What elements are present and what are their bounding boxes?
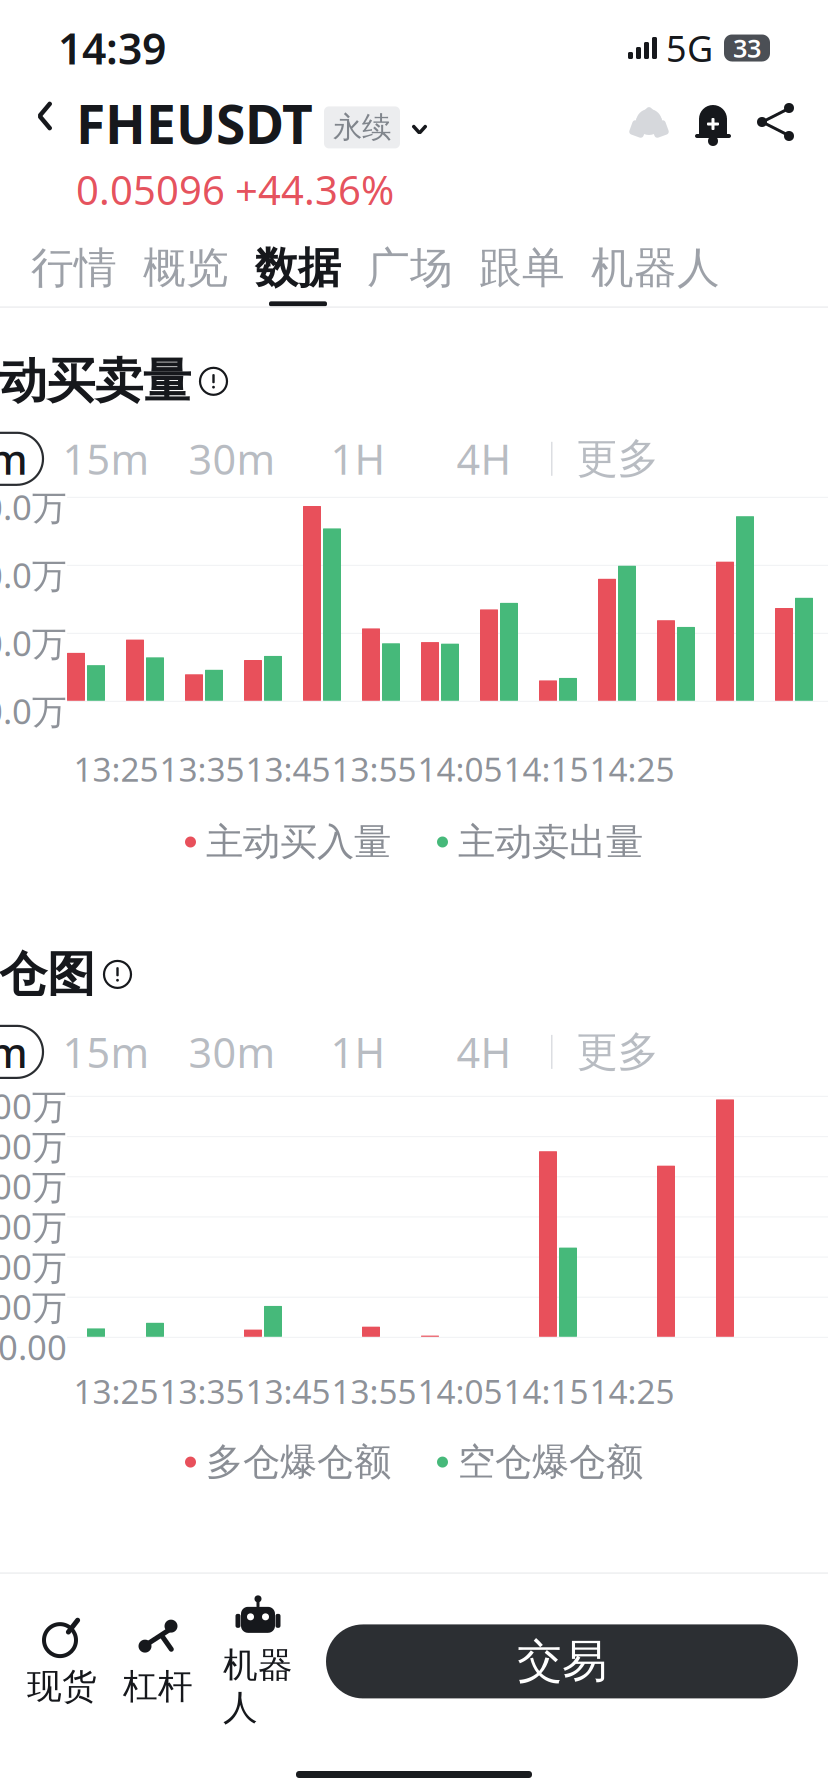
button[interactable]: 杠杆 [110,1605,206,1718]
staticText: 广场 [367,242,453,294]
button[interactable]: 广场 [354,234,466,306]
staticText: 2.00万 [0,1284,67,1330]
button[interactable]: 现货 [14,1605,110,1718]
staticText: 更多 [576,433,658,484]
button[interactable]: 机器人 [206,1584,310,1739]
staticText: 空仓爆仓额 [458,1439,643,1485]
button[interactable]: 30m [169,433,295,485]
button[interactable]: Favorite [628,102,670,142]
staticText: 800.0万 [0,484,67,530]
staticText: 更多 [576,1026,658,1077]
staticText: FHEUSDT [76,88,313,159]
staticText: 14:15 [503,1369,588,1413]
staticText: 机器人 [223,1644,293,1729]
staticText: 行情 [31,242,117,294]
staticText: 10.00万 [0,1123,67,1169]
button[interactable]: Price alert [692,100,734,144]
button[interactable]: 15m [43,433,169,485]
staticText: 13:35 [159,1369,244,1413]
staticText: 15m [62,431,149,486]
staticText: 13:55 [331,1369,416,1413]
button[interactable]: 数据 [242,234,354,306]
staticText: 13:45 [245,747,330,791]
staticText: 交易 [517,1634,607,1689]
staticText: 8.00万 [0,1163,67,1209]
button[interactable]: 更多 [552,433,658,485]
button[interactable]: 概览 [130,234,242,306]
staticText: 400.0万 [0,620,67,666]
button[interactable]: 行情 [18,234,130,306]
staticText: 1H [330,1024,385,1079]
staticText: 主动买入量 [206,819,391,865]
staticText: 14:25 [589,747,674,791]
staticText: 多仓爆仓额 [206,1439,391,1485]
staticText: 13:25 [73,747,158,791]
staticText: 0.00 [0,1324,67,1370]
staticText: 14:15 [503,747,588,791]
staticText: 14:05 [417,1369,502,1413]
staticText: 主动买卖量 [0,352,191,411]
staticText: 0.05096 +44.36% [76,163,394,216]
staticText: 5m [0,431,27,486]
staticText: 30m [188,1024,275,1079]
staticText: 30m [188,431,275,486]
staticText: 6.00万 [0,1203,67,1249]
staticText: 现货 [27,1665,97,1708]
button[interactable]: Back [18,84,72,148]
button[interactable]: 1H [295,433,421,485]
button[interactable]: 4H [421,433,547,485]
staticText: 爆仓图 [0,945,95,1004]
staticText: 14:25 [589,1369,674,1413]
staticText: 4H [456,1024,511,1079]
staticText: 永续 [333,109,391,145]
button[interactable]: 15m [43,1026,169,1078]
staticText: 12.00万 [0,1083,67,1129]
button[interactable]: 1H [295,1026,421,1078]
button[interactable]: 4H [421,1026,547,1078]
staticText: 1H [330,431,385,486]
staticText: 杠杆 [123,1665,193,1708]
staticText: 13:35 [159,747,244,791]
staticText: 主动卖出量 [458,819,643,865]
staticText: 200.0万 [0,688,67,734]
staticText: 14:39 [58,20,166,76]
staticText: 15m [62,1024,149,1079]
staticText: 5G [666,24,713,72]
staticText: 13:25 [73,1369,158,1413]
button[interactable]: 5m [0,1026,43,1078]
staticText: 13:45 [245,1369,330,1413]
button[interactable]: 跟单 [466,234,578,306]
button[interactable]: 更多 [552,1026,658,1078]
staticText: 600.0万 [0,552,67,598]
staticText: 跟单 [479,242,565,294]
staticText: 33 [733,31,761,65]
staticText: 数据 [255,242,341,294]
button[interactable]: Share [756,102,796,142]
staticText: 机器人 [591,242,720,294]
button[interactable]: 30m [169,1026,295,1078]
staticText: 13:55 [331,747,416,791]
staticText: 概览 [143,242,229,294]
button[interactable]: 交易 [326,1624,798,1698]
staticText: 5m [0,1024,27,1079]
button[interactable]: 机器人 [578,234,733,306]
staticText: 4H [456,431,511,486]
button[interactable]: 5m [0,433,43,485]
staticText: 14:05 [417,747,502,791]
staticText: 4.00万 [0,1243,67,1289]
